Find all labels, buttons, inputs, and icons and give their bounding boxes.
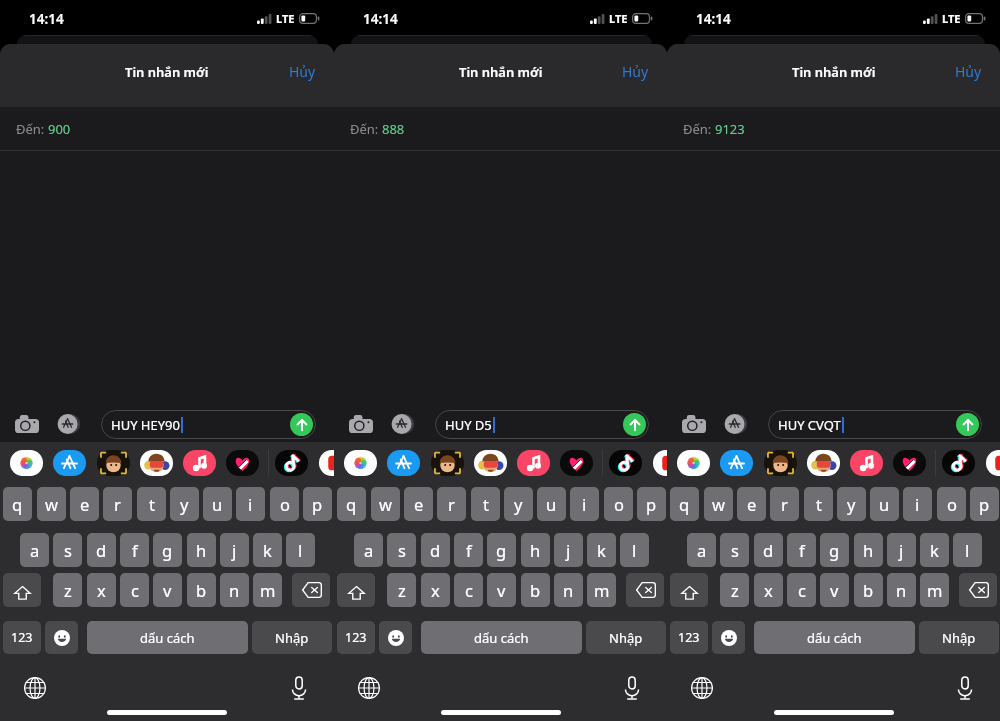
button[interactable]: x: [754, 573, 783, 607]
button[interactable]: HUY HEY90: [101, 410, 316, 439]
button[interactable]: dấu cách: [87, 621, 248, 654]
button[interactable]: r: [437, 487, 466, 521]
button[interactable]: j: [220, 533, 249, 567]
button[interactable]: o: [937, 487, 966, 521]
button[interactable]: p: [970, 487, 999, 521]
button[interactable]: Fitness: [893, 450, 926, 476]
button[interactable]: Nhập: [252, 621, 332, 654]
button[interactable]: d: [754, 533, 783, 567]
button[interactable]: Photos: [344, 450, 377, 476]
button[interactable]: g: [820, 533, 849, 567]
button[interactable]: Send: [956, 413, 979, 436]
button[interactable]: h: [521, 533, 550, 567]
button[interactable]: n: [554, 573, 583, 607]
button[interactable]: Shift: [670, 573, 708, 607]
button[interactable]: Change keyboard: [689, 675, 715, 701]
button[interactable]: v: [820, 573, 849, 607]
button[interactable]: o: [604, 487, 633, 521]
button[interactable]: App Store: [387, 450, 420, 476]
button[interactable]: f: [120, 533, 149, 567]
button[interactable]: Fitness: [226, 450, 259, 476]
button[interactable]: HUY D5: [435, 410, 649, 439]
button[interactable]: dấu cách: [421, 621, 582, 654]
button[interactable]: o: [270, 487, 299, 521]
button[interactable]: Send: [623, 413, 646, 436]
button[interactable]: App: [653, 450, 667, 476]
button[interactable]: TikTok: [275, 450, 308, 476]
button[interactable]: m: [920, 573, 949, 607]
button[interactable]: z: [720, 573, 749, 607]
button[interactable]: Shift: [337, 573, 375, 607]
button[interactable]: TikTok: [942, 450, 975, 476]
button[interactable]: g: [153, 533, 182, 567]
button[interactable]: s: [53, 533, 82, 567]
button[interactable]: n: [220, 573, 249, 607]
button[interactable]: t: [471, 487, 500, 521]
button[interactable]: Memoji: [97, 450, 130, 476]
button[interactable]: Camera: [681, 411, 707, 437]
button[interactable]: n: [887, 573, 916, 607]
button[interactable]: Hủy: [271, 54, 334, 89]
button[interactable]: TikTok: [609, 450, 642, 476]
button[interactable]: Shift: [3, 573, 41, 607]
button[interactable]: Change keyboard: [356, 675, 382, 701]
button[interactable]: App: [319, 450, 334, 476]
button[interactable]: j: [554, 533, 583, 567]
button[interactable]: App Store: [56, 411, 82, 437]
button[interactable]: d: [421, 533, 450, 567]
button[interactable]: Dictate: [952, 675, 978, 701]
button[interactable]: p: [637, 487, 666, 521]
button[interactable]: Emoji: [712, 621, 745, 654]
button[interactable]: Memoji 2: [140, 450, 173, 476]
button[interactable]: x: [421, 573, 450, 607]
button[interactable]: Hủy: [937, 54, 1000, 89]
button[interactable]: q: [670, 487, 699, 521]
button[interactable]: b: [187, 573, 216, 607]
button[interactable]: a: [20, 533, 49, 567]
button[interactable]: Music: [183, 450, 216, 476]
button[interactable]: a: [687, 533, 716, 567]
button[interactable]: m: [587, 573, 616, 607]
button[interactable]: y: [170, 487, 199, 521]
button[interactable]: i: [570, 487, 599, 521]
button[interactable]: Dictate: [619, 675, 645, 701]
button[interactable]: w: [37, 487, 66, 521]
button[interactable]: dấu cách: [754, 621, 915, 654]
button[interactable]: k: [920, 533, 949, 567]
button[interactable]: p: [303, 487, 332, 521]
button[interactable]: Send: [290, 413, 313, 436]
button[interactable]: Đến:: [667, 107, 1000, 150]
button[interactable]: Delete: [959, 573, 997, 607]
button[interactable]: 123: [337, 621, 375, 654]
button[interactable]: App Store: [390, 411, 416, 437]
button[interactable]: x: [87, 573, 116, 607]
button[interactable]: Camera: [348, 411, 374, 437]
button[interactable]: t: [804, 487, 833, 521]
button[interactable]: f: [787, 533, 816, 567]
button[interactable]: App Store: [720, 450, 753, 476]
button[interactable]: v: [153, 573, 182, 607]
button[interactable]: e: [737, 487, 766, 521]
button[interactable]: b: [521, 573, 550, 607]
button[interactable]: b: [854, 573, 883, 607]
button[interactable]: Photos: [677, 450, 710, 476]
button[interactable]: e: [404, 487, 433, 521]
button[interactable]: Delete: [292, 573, 330, 607]
button[interactable]: k: [253, 533, 282, 567]
button[interactable]: h: [854, 533, 883, 567]
button[interactable]: s: [387, 533, 416, 567]
button[interactable]: u: [870, 487, 899, 521]
button[interactable]: l: [286, 533, 315, 567]
button[interactable]: c: [454, 573, 483, 607]
button[interactable]: y: [837, 487, 866, 521]
button[interactable]: Music: [850, 450, 883, 476]
button[interactable]: App Store: [53, 450, 86, 476]
button[interactable]: Memoji: [431, 450, 464, 476]
button[interactable]: g: [487, 533, 516, 567]
button[interactable]: Camera: [14, 411, 40, 437]
button[interactable]: f: [454, 533, 483, 567]
button[interactable]: m: [253, 573, 282, 607]
button[interactable]: App Store: [723, 411, 749, 437]
button[interactable]: k: [587, 533, 616, 567]
button[interactable]: v: [487, 573, 516, 607]
